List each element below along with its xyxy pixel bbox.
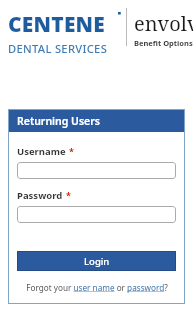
button[interactable]: Username field	[17, 162, 176, 179]
staticText: envolve	[134, 10, 193, 37]
staticText: CENTENE	[8, 10, 106, 39]
staticText: Login	[84, 255, 110, 268]
staticText: Benefit Options	[134, 38, 193, 48]
staticText: *	[69, 145, 74, 157]
staticText: *	[66, 189, 71, 201]
button[interactable]: Login	[17, 251, 176, 271]
button[interactable]: Forgot your user name or password?	[17, 282, 176, 293]
staticText: Forgot your user name or password?	[26, 282, 168, 293]
button[interactable]: Password field	[17, 206, 176, 223]
staticText: DENTAL SERVICES	[8, 41, 108, 56]
staticText: Username	[17, 145, 66, 158]
staticText: Returning Users	[17, 114, 100, 128]
staticText: Password	[17, 189, 63, 202]
